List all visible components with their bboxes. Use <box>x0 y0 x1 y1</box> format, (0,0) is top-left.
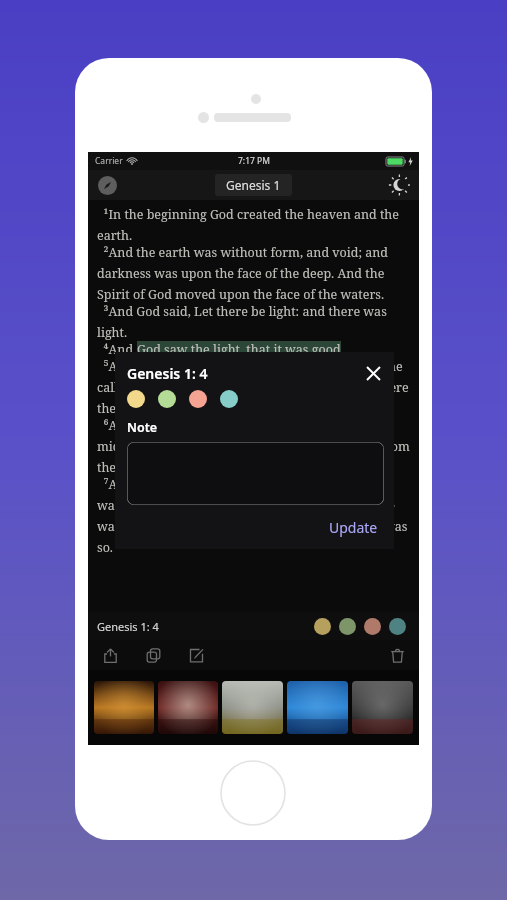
staticText: ⁶And God said, Let there be a firmament … <box>97 417 410 476</box>
staticText: ⁴And <box>97 341 137 358</box>
button[interactable]: Copy <box>142 644 164 666</box>
staticText: ⁷And God made the firmament, and divided… <box>97 476 410 556</box>
button[interactable]: Colour 1 <box>127 390 145 408</box>
button[interactable]: Update <box>323 514 384 541</box>
button[interactable]: Background image <box>352 681 413 734</box>
button[interactable]: Genesis 1 <box>215 174 292 196</box>
staticText: Note <box>127 419 158 436</box>
button[interactable]: Colour 4 <box>220 390 238 408</box>
staticText: God saw the light, that it was good <box>137 341 341 358</box>
button[interactable]: Colour 3 <box>189 390 207 408</box>
staticText: Genesis 1: 4 <box>97 619 159 634</box>
button[interactable]: Background image <box>222 681 283 734</box>
staticText: Genesis 1: 4 <box>127 364 208 383</box>
staticText: Update <box>329 518 378 537</box>
staticText: ¹In the beginning God created the heaven… <box>97 206 410 244</box>
button[interactable]: Edit <box>185 644 207 666</box>
button[interactable]: Colour 2 <box>158 390 176 408</box>
button[interactable]: Background image <box>287 681 348 734</box>
button[interactable]: Toggle night mode <box>387 173 411 197</box>
staticText: ²And the earth was without form, and voi… <box>97 244 410 303</box>
button[interactable]: Highlight colour <box>389 618 406 635</box>
button[interactable]: Share <box>99 644 121 666</box>
button[interactable]: Navigate <box>96 174 118 196</box>
staticText: 7:17 PM <box>238 155 270 167</box>
staticText: Genesis 1 <box>226 177 281 193</box>
staticText: ³And God said, Let there be light: and t… <box>97 303 410 341</box>
staticText: Carrier <box>95 155 123 167</box>
button[interactable]: Highlight colour <box>364 618 381 635</box>
button[interactable]: Background image <box>94 681 154 734</box>
button[interactable]: Delete <box>386 644 408 666</box>
button[interactable]: Note input <box>127 442 384 505</box>
button[interactable]: Highlight colour <box>339 618 356 635</box>
button[interactable]: Close <box>362 362 384 384</box>
button[interactable]: Background image <box>158 681 218 734</box>
button[interactable]: Highlight colour <box>314 618 331 635</box>
staticText: ⁵And God called the light Day, and the d… <box>97 358 410 417</box>
